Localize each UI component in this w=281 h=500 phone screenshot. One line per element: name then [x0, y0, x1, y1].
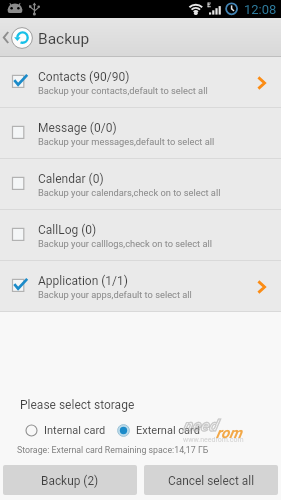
button[interactable]: Back [0, 18, 90, 57]
button[interactable]: Message (0/0) [0, 108, 281, 159]
staticText: Message (0/0) [38, 121, 117, 135]
staticText: Backup your contacts,default to select a… [38, 85, 208, 96]
button[interactable]: External card [117, 424, 200, 437]
staticText: External card [136, 424, 200, 437]
button[interactable]: Calendar (0) [0, 159, 281, 210]
staticText: Backup [38, 30, 90, 48]
staticText: Backup your calendars,check on to select… [38, 187, 221, 198]
staticText: rom [216, 424, 242, 442]
staticText: Application (1/1) [38, 274, 128, 288]
staticText: Backup your apps,default to select all [38, 289, 192, 300]
staticText: Internal card [44, 424, 106, 437]
staticText: Backup (2) [41, 474, 99, 488]
button[interactable]: Contacts (90/90) [0, 57, 281, 108]
staticText: Cancel select all [168, 474, 255, 488]
button[interactable]: CallLog (0) [0, 210, 281, 261]
button[interactable]: Application (1/1) [0, 261, 281, 312]
staticText: Backup your messages,default to select a… [38, 136, 215, 147]
button[interactable]: Backup (2) [3, 465, 137, 495]
staticText: Backup your calllogs,check on to select … [38, 238, 212, 249]
staticText: Contacts (90/90) [38, 70, 130, 84]
staticText: Please select storage [20, 398, 135, 412]
staticText: www.needrom.com [183, 436, 244, 444]
staticText: Calendar (0) [38, 172, 104, 186]
button[interactable]: Cancel select all [144, 465, 278, 495]
staticText: 12:08 [244, 2, 277, 17]
button[interactable]: Internal card [25, 424, 106, 437]
staticText: need [183, 416, 218, 435]
staticText: Storage: External card Remaining space:1… [17, 445, 209, 455]
staticText: CallLog (0) [38, 223, 97, 237]
